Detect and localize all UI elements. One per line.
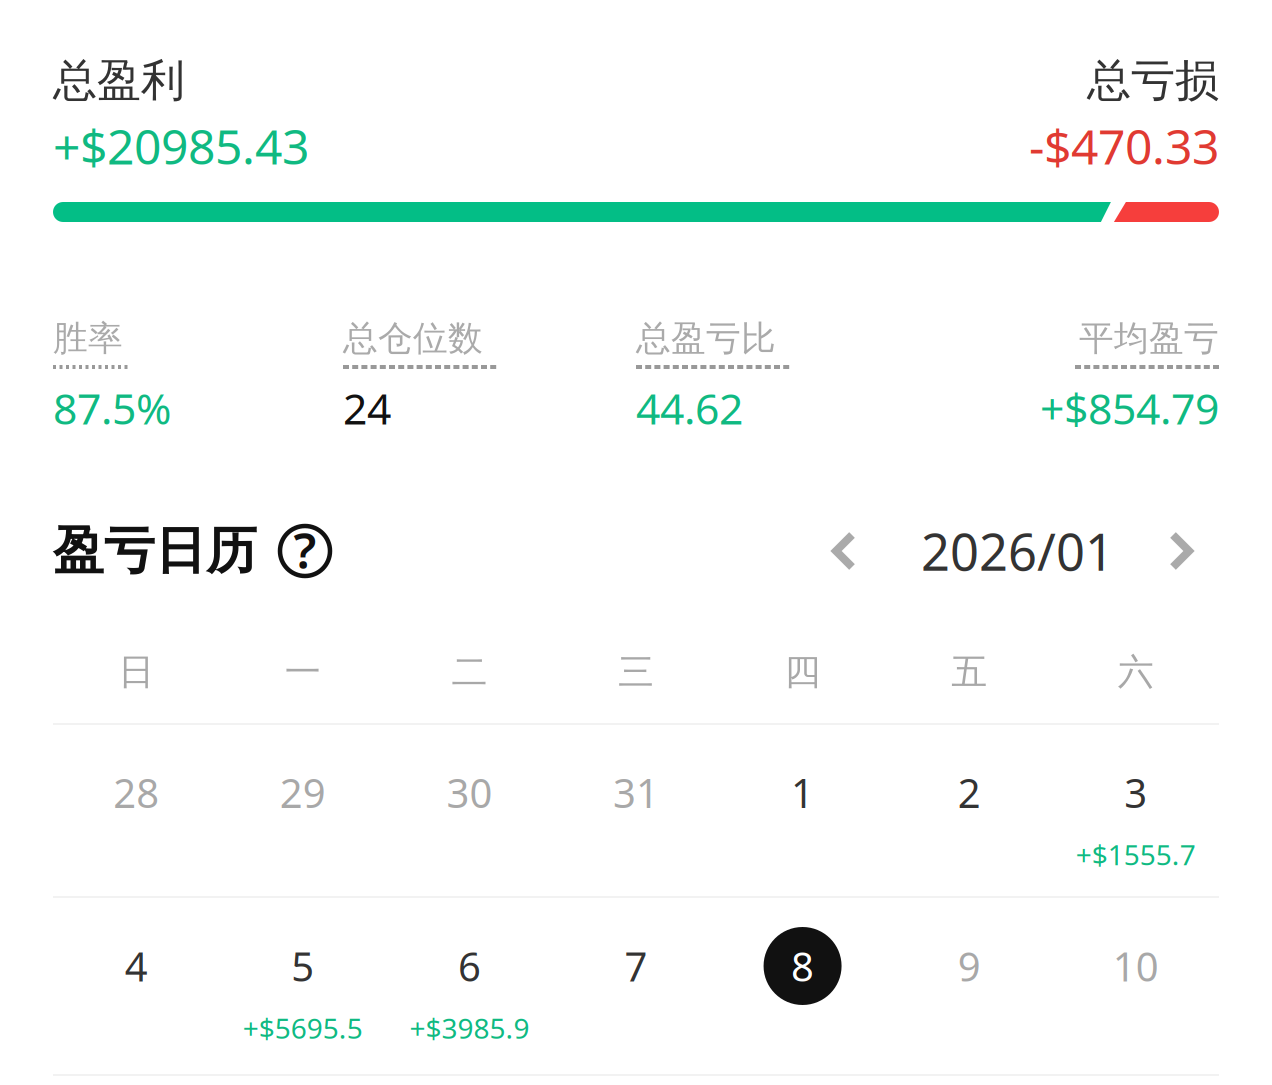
staticText: 28 bbox=[113, 766, 159, 819]
button[interactable]: 上个月 bbox=[816, 526, 872, 576]
staticText: 4 bbox=[125, 939, 148, 992]
staticText: 平均盈亏 bbox=[1079, 317, 1219, 360]
staticText: 29 bbox=[280, 766, 326, 819]
staticText: 1 bbox=[791, 766, 814, 819]
staticText: 五 bbox=[951, 650, 987, 694]
button[interactable]: 30日 bbox=[386, 741, 553, 879]
staticText: 87.5% bbox=[53, 380, 171, 436]
staticText: 9 bbox=[958, 939, 981, 992]
staticText: 总亏损 bbox=[1087, 53, 1219, 107]
button[interactable]: 7日 bbox=[553, 915, 719, 1053]
staticText: +$20985.43 bbox=[53, 114, 309, 178]
staticText: 盈亏日历 bbox=[53, 520, 257, 582]
staticText: 24 bbox=[343, 380, 391, 436]
staticText: -$470.33 bbox=[1029, 114, 1219, 178]
button[interactable]: 3日 +$1555.7 bbox=[1052, 741, 1219, 879]
button[interactable]: 8日 bbox=[719, 915, 886, 1053]
staticText: 6 bbox=[458, 939, 481, 992]
button[interactable]: 胜率 bbox=[53, 321, 343, 425]
button[interactable]: 5日 +$5695.5 bbox=[220, 915, 386, 1053]
staticText: 一 bbox=[285, 650, 321, 694]
button[interactable]: 4日 bbox=[53, 915, 220, 1053]
staticText: +$5695.5 bbox=[243, 1009, 363, 1047]
staticText: 三 bbox=[618, 650, 654, 694]
staticText: 31 bbox=[613, 766, 659, 819]
staticText: +$1555.7 bbox=[1076, 836, 1196, 873]
staticText: +$854.79 bbox=[1040, 380, 1219, 436]
button[interactable]: 1日 bbox=[719, 741, 886, 879]
staticText: 3 bbox=[1124, 766, 1147, 819]
button[interactable]: 29日 bbox=[220, 741, 386, 879]
staticText: 7 bbox=[624, 939, 647, 992]
staticText: 日 bbox=[118, 650, 154, 694]
button[interactable]: 总盈亏比 bbox=[636, 321, 929, 425]
staticText: 六 bbox=[1118, 650, 1154, 694]
button[interactable]: 2日 bbox=[886, 741, 1052, 879]
staticText: 5 bbox=[291, 939, 314, 992]
staticText: +$3985.9 bbox=[409, 1009, 529, 1047]
staticText: 10 bbox=[1113, 939, 1159, 992]
button[interactable]: 盈亏日历说明 bbox=[257, 526, 330, 576]
staticText: 2 bbox=[958, 766, 981, 819]
staticText: 8 bbox=[791, 939, 814, 992]
button[interactable]: 10日 bbox=[1052, 915, 1219, 1053]
button[interactable]: 9日 bbox=[886, 915, 1052, 1053]
staticText: 二 bbox=[451, 650, 487, 694]
button[interactable]: 31日 bbox=[553, 741, 719, 879]
button[interactable]: 总仓位数 bbox=[343, 321, 636, 425]
button[interactable]: 6日 +$3985.9 bbox=[386, 915, 553, 1053]
staticText: 2026/01 bbox=[921, 517, 1114, 585]
staticText: 胜率 bbox=[53, 317, 123, 360]
staticText: 总盈亏比 bbox=[636, 317, 776, 360]
button[interactable]: 下个月 bbox=[1153, 526, 1209, 576]
button[interactable]: 28日 bbox=[53, 741, 220, 879]
staticText: ? bbox=[293, 517, 316, 582]
staticText: 44.62 bbox=[636, 380, 743, 436]
button[interactable]: 平均盈亏 bbox=[929, 321, 1219, 425]
staticText: 四 bbox=[785, 650, 821, 694]
staticText: 30 bbox=[446, 766, 492, 819]
staticText: 总仓位数 bbox=[343, 317, 483, 360]
staticText: 总盈利 bbox=[53, 53, 185, 107]
